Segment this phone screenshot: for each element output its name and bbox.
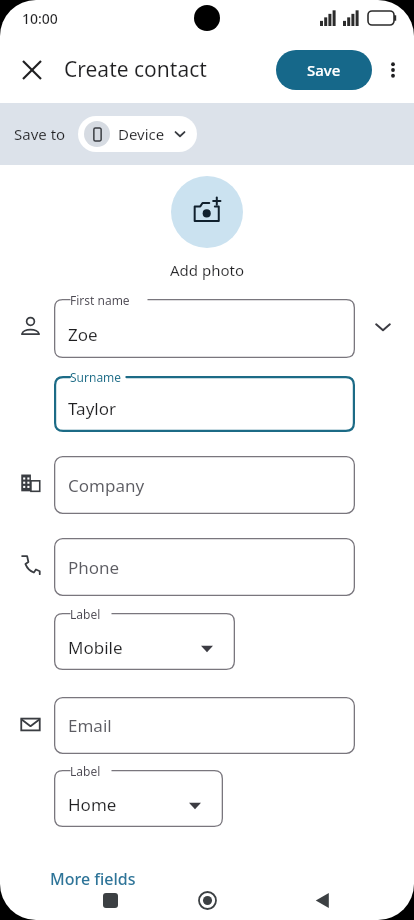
button[interactable]: Recent apps (88, 880, 132, 920)
staticText: Add photo (170, 260, 244, 280)
staticText: Email (68, 714, 112, 737)
button[interactable]: Back (300, 880, 344, 920)
staticText: Save (307, 60, 341, 80)
button[interactable]: Device (78, 116, 197, 152)
staticText: First name (70, 292, 130, 308)
staticText: Device (118, 124, 165, 144)
staticText: Taylor (68, 397, 116, 420)
staticText: Zoe (68, 323, 98, 346)
button[interactable]: Save (276, 50, 372, 90)
button[interactable]: Email (54, 697, 355, 754)
button[interactable]: First name (54, 299, 355, 358)
staticText: 10:00 (22, 9, 58, 28)
staticText: More fields (50, 868, 136, 890)
staticText: Label (70, 763, 101, 779)
staticText: Surname (70, 369, 122, 385)
staticText: Company (68, 474, 145, 497)
button[interactable]: Company (54, 456, 355, 514)
button[interactable]: Home (185, 880, 229, 920)
button[interactable]: Phone (54, 538, 355, 596)
button[interactable]: Surname (54, 376, 355, 432)
button[interactable]: More options (372, 49, 414, 91)
staticText: Label (70, 606, 101, 622)
staticText: Save to (14, 124, 66, 144)
button[interactable]: More fields (46, 864, 140, 894)
button[interactable]: Expand name fields (368, 312, 398, 342)
staticText: Mobile (68, 636, 123, 659)
button[interactable]: Close (8, 46, 56, 94)
staticText: Home (68, 793, 117, 816)
button[interactable]: Add photo (171, 176, 243, 248)
button[interactable]: Label (54, 613, 235, 670)
staticText: Create contact (64, 55, 207, 84)
staticText: Phone (68, 556, 120, 579)
button[interactable]: Label (54, 770, 223, 827)
